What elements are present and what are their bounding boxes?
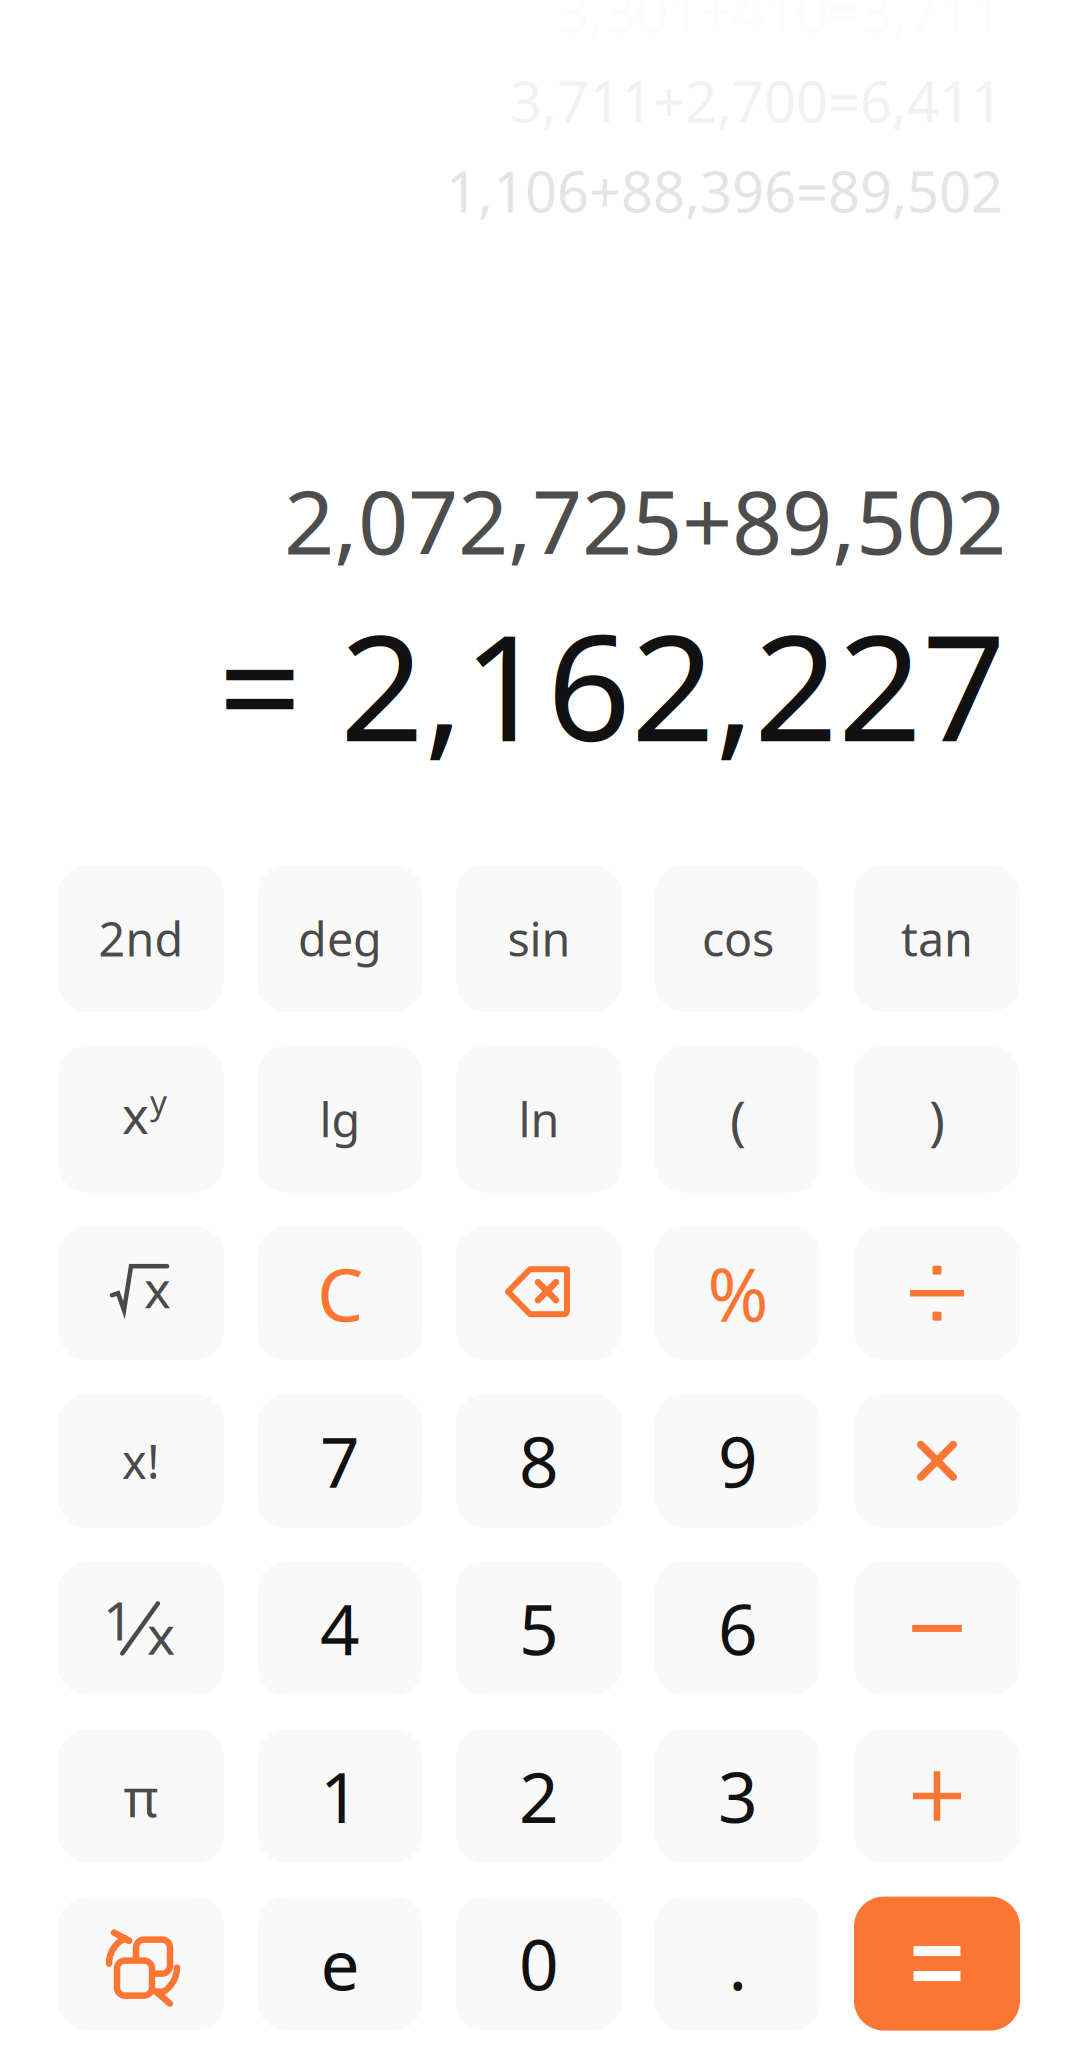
button[interactable]: x to the power of y — [58, 1046, 224, 1193]
staticText: x! — [122, 1430, 160, 1492]
button[interactable]: 2nd — [58, 865, 224, 1012]
button[interactable]: cos — [655, 865, 821, 1012]
button[interactable]: % — [655, 1226, 821, 1360]
button[interactable]: 2 — [456, 1729, 622, 1863]
button[interactable]: tan — [854, 865, 1020, 1012]
staticText: 1 — [320, 1750, 360, 1842]
button[interactable]: Equals — [854, 1897, 1020, 2031]
button[interactable]: 0 — [456, 1897, 622, 2031]
staticText: . — [728, 1918, 747, 2010]
button[interactable]: Minus — [854, 1561, 1020, 1695]
staticText: 2 — [519, 1750, 559, 1842]
staticText: % — [707, 1244, 768, 1342]
button[interactable]: ) — [854, 1046, 1020, 1193]
button[interactable]: sin — [456, 865, 622, 1012]
staticText: 6 — [718, 1582, 758, 1674]
staticText: 7 — [320, 1415, 360, 1507]
staticText: 3 — [718, 1750, 758, 1842]
staticText: C — [317, 1244, 363, 1342]
button[interactable]: C — [257, 1226, 423, 1360]
button[interactable]: 4 — [257, 1561, 423, 1695]
button[interactable]: ln — [456, 1046, 622, 1193]
button[interactable]: Square root — [58, 1226, 224, 1360]
staticText: 3,711+2,700=6,411 — [510, 64, 1003, 138]
button[interactable]: Multiply — [854, 1394, 1020, 1528]
button[interactable]: 8 — [456, 1394, 622, 1528]
staticText: 1 — [103, 1584, 134, 1655]
button[interactable]: Convert units — [58, 1897, 224, 2031]
button[interactable]: π — [58, 1729, 224, 1863]
staticText: 2,072,725+89,502 — [284, 462, 1006, 579]
button[interactable]: lg — [257, 1046, 423, 1193]
button[interactable]: deg — [257, 865, 423, 1012]
button[interactable]: 6 — [655, 1561, 821, 1695]
staticText: 4 — [320, 1582, 360, 1674]
staticText: ln — [518, 1088, 559, 1150]
staticText: cos — [702, 907, 774, 969]
button[interactable]: Plus — [854, 1729, 1020, 1863]
staticText: lg — [319, 1088, 360, 1150]
staticText: y — [150, 1079, 167, 1123]
button[interactable]: e — [257, 1897, 423, 2031]
staticText: deg — [298, 907, 382, 969]
staticText: 2nd — [98, 907, 183, 969]
button[interactable]: . — [655, 1897, 821, 2031]
staticText: 1,106+88,396=89,502 — [446, 154, 1003, 228]
staticText: 9 — [718, 1415, 758, 1507]
staticText: 0 — [519, 1918, 559, 2010]
staticText: 8 — [519, 1415, 559, 1507]
staticText: 5 — [519, 1582, 559, 1674]
staticText: tan — [901, 907, 973, 969]
staticText: x — [122, 1081, 149, 1148]
button[interactable]: One over x — [58, 1561, 224, 1695]
button[interactable]: 7 — [257, 1394, 423, 1528]
button[interactable]: Backspace — [456, 1226, 622, 1360]
button[interactable]: Divide — [854, 1226, 1020, 1360]
staticText: ( — [730, 1084, 746, 1154]
button[interactable]: x! — [58, 1394, 224, 1528]
staticText: sin — [507, 907, 570, 969]
staticText: x — [144, 1255, 171, 1322]
staticText: e — [320, 1918, 359, 2010]
staticText: x — [147, 1599, 175, 1669]
staticText: π — [123, 1761, 158, 1831]
button[interactable]: 3 — [655, 1729, 821, 1863]
staticText: ) — [929, 1084, 945, 1154]
button[interactable]: 9 — [655, 1394, 821, 1528]
staticText: = 2,162,227 — [218, 587, 1006, 782]
button[interactable]: 5 — [456, 1561, 622, 1695]
button[interactable]: 1 — [257, 1729, 423, 1863]
button[interactable]: ( — [655, 1046, 821, 1193]
